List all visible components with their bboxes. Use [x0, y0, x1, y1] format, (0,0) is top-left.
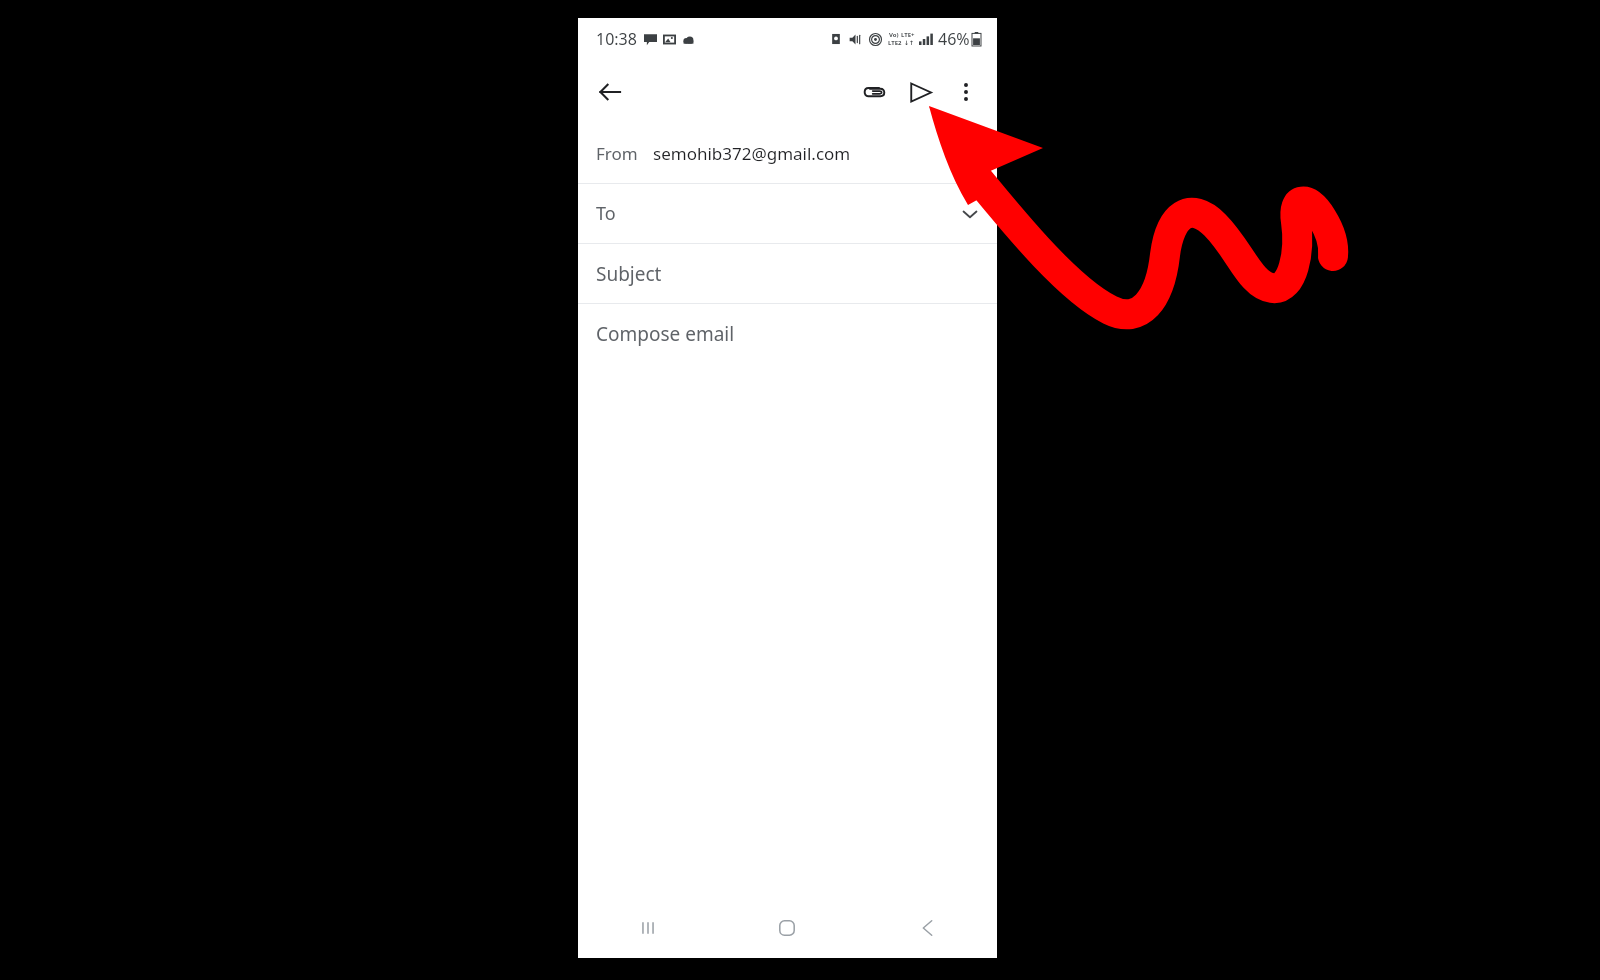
staticText: 46% [938, 28, 970, 50]
button[interactable]: Recent apps [578, 898, 717, 958]
button[interactable]: To [578, 184, 997, 243]
button[interactable]: Home [717, 898, 857, 958]
staticText: ↓↑ [904, 39, 915, 46]
staticText: Subject [596, 261, 662, 287]
staticText: From [596, 142, 638, 165]
staticText: Vo) [889, 31, 899, 39]
button[interactable]: Back [586, 68, 634, 116]
button[interactable]: Attach file [851, 69, 897, 115]
staticText: LTE+ [901, 31, 915, 39]
button[interactable]: Subject [578, 244, 997, 303]
staticText: To [596, 201, 616, 226]
button[interactable]: From [578, 124, 997, 183]
button[interactable]: More options [943, 69, 989, 115]
button[interactable]: Send [897, 69, 943, 115]
button[interactable]: Compose email [578, 304, 997, 363]
staticText: 10:38 [596, 28, 637, 50]
staticText: semohib372@gmail.com [653, 142, 851, 165]
staticText: Compose email [596, 321, 735, 347]
staticText: LTE2 [888, 39, 902, 47]
button[interactable]: Back [857, 898, 997, 958]
